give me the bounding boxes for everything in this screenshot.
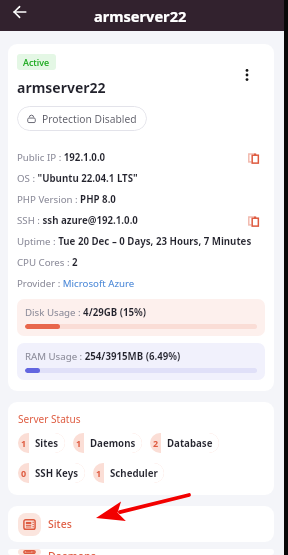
button[interactable]: Back bbox=[8, 0, 32, 24]
staticText: Sites bbox=[48, 517, 72, 531]
staticText: armserver22 bbox=[94, 6, 187, 26]
staticText: CPU Cores : 2 bbox=[17, 256, 78, 269]
staticText: Sites bbox=[35, 437, 59, 450]
button[interactable]: 1 bbox=[73, 433, 142, 453]
button[interactable]: Daemons bbox=[8, 549, 274, 555]
staticText: Active bbox=[23, 56, 50, 68]
button[interactable]: Sites bbox=[8, 506, 274, 542]
staticText: 0 bbox=[21, 467, 27, 479]
staticText: PHP Version : PHP 8.0 bbox=[17, 193, 116, 206]
staticText: 2 bbox=[153, 437, 159, 449]
staticText: Database bbox=[167, 437, 213, 450]
staticText: 1 bbox=[76, 437, 82, 449]
staticText: Uptime : Tue 20 Dec – 0 Days, 23 Hours, … bbox=[17, 235, 252, 248]
staticText: Public IP : 192.1.0.0 bbox=[17, 151, 106, 164]
staticText: Server Status bbox=[18, 412, 81, 426]
button[interactable]: More options bbox=[236, 64, 258, 86]
button[interactable]: Copy bbox=[245, 150, 261, 166]
staticText: RAM Usage : 254/3915MB (6.49%) bbox=[25, 350, 181, 363]
staticText: Provider : Microsoft Azure bbox=[17, 277, 135, 290]
button[interactable]: 1 bbox=[93, 463, 164, 483]
button[interactable]: Copy bbox=[245, 213, 261, 229]
button[interactable]: 1 bbox=[18, 433, 65, 453]
button[interactable]: Protection Disabled bbox=[17, 106, 147, 131]
staticText: Disk Usage : 4/29GB (15%) bbox=[25, 306, 147, 319]
staticText: Daemons bbox=[90, 437, 136, 450]
button[interactable]: 0 bbox=[18, 463, 85, 483]
staticText: OS : "Ubuntu 22.04.1 LTS" bbox=[17, 172, 138, 185]
button[interactable]: 2 bbox=[150, 433, 219, 453]
staticText: Scheduler bbox=[110, 467, 158, 480]
staticText: Daemons bbox=[48, 549, 96, 555]
staticText: 1 bbox=[21, 437, 27, 449]
staticText: SSH Keys bbox=[35, 467, 79, 480]
staticText: Protection Disabled bbox=[42, 112, 137, 126]
staticText: 1 bbox=[96, 467, 102, 479]
staticText: armserver22 bbox=[17, 78, 106, 97]
staticText: SSH : ssh azure@192.1.0.0 bbox=[17, 214, 138, 227]
